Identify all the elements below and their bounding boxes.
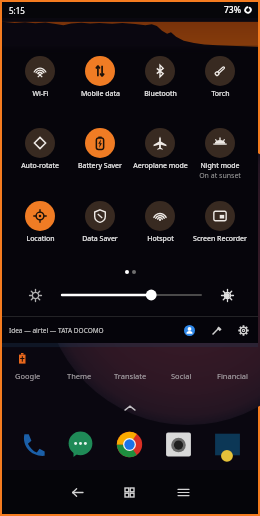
- button[interactable]: Auto brightness: [218, 286, 236, 304]
- button[interactable]: Settings: [234, 321, 252, 339]
- button[interactable]: Financial: [207, 368, 258, 384]
- button[interactable]: Open app drawer: [121, 400, 139, 416]
- staticText: Data Saver: [82, 234, 118, 244]
- button[interactable]: Wi-Fi: [10, 56, 70, 99]
- button[interactable]: Bluetooth: [130, 56, 190, 99]
- button[interactable]: Chrome: [105, 423, 154, 465]
- button[interactable]: Aeroplane mode: [130, 128, 190, 171]
- button[interactable]: User account: [180, 321, 198, 339]
- button[interactable]: Recent apps: [170, 479, 196, 505]
- button[interactable]: Social: [156, 368, 207, 384]
- staticText: 73%: [224, 4, 241, 16]
- staticText: Night mode: [200, 161, 240, 171]
- staticText: Translate: [114, 371, 147, 381]
- staticText: Screen Recorder: [193, 234, 247, 244]
- staticText: Idea — airtel — TATA DOCOMO: [9, 326, 104, 335]
- staticText: Wi-Fi: [32, 89, 49, 99]
- button[interactable]: Google: [2, 368, 54, 384]
- staticText: Aeroplane mode: [133, 161, 188, 171]
- staticText: 5:15: [9, 5, 25, 16]
- staticText: Bluetooth: [144, 89, 177, 99]
- staticText: On at sunset: [199, 171, 241, 178]
- button[interactable]: Location: [10, 201, 70, 244]
- button[interactable]: Theme: [54, 368, 105, 384]
- staticText: Torch: [211, 89, 230, 99]
- button[interactable]: Screen Recorder: [190, 201, 250, 244]
- staticText: Financial: [217, 371, 248, 381]
- staticText: Google: [15, 371, 41, 381]
- button[interactable]: Night mode: [190, 128, 250, 178]
- staticText: Battery Saver: [78, 161, 122, 171]
- staticText: Location: [26, 234, 55, 244]
- button[interactable]: Camera: [154, 423, 203, 465]
- staticText: Mobile data: [81, 89, 120, 99]
- button[interactable]: Edit tiles: [207, 321, 225, 339]
- button[interactable]: Mobile data: [70, 56, 130, 99]
- button[interactable]: Messages: [56, 423, 105, 465]
- staticText: Auto-rotate: [21, 161, 59, 171]
- button[interactable]: Torch: [190, 56, 250, 99]
- button[interactable]: Back: [64, 479, 90, 505]
- button[interactable]: Auto-rotate: [10, 128, 70, 171]
- staticText: Hotspot: [147, 234, 174, 244]
- button[interactable]: Battery Saver: [70, 128, 130, 171]
- button[interactable]: Hotspot: [130, 201, 190, 244]
- button[interactable]: Gallery: [203, 423, 252, 465]
- button[interactable]: Brightness: [62, 286, 201, 304]
- button[interactable]: Translate: [105, 368, 156, 384]
- button[interactable]: Data Saver: [70, 201, 130, 244]
- button[interactable]: Low brightness: [26, 286, 44, 304]
- staticText: Social: [171, 371, 192, 381]
- button[interactable]: Home: [116, 479, 142, 505]
- button[interactable]: Phone: [8, 423, 56, 465]
- staticText: Theme: [67, 371, 92, 381]
